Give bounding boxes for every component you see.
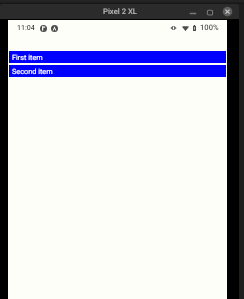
- button[interactable]: Minimize: [186, 4, 201, 19]
- other: Wi-Fi: [182, 25, 189, 31]
- staticText: Pixel 2 XL: [103, 7, 137, 16]
- other: Notification: [40, 25, 47, 32]
- other: Status: [170, 25, 177, 31]
- staticText: 11:04: [17, 24, 35, 32]
- staticText: 100%: [200, 23, 219, 32]
- button[interactable]: Maximize: [203, 4, 218, 19]
- other: Notification: [51, 25, 58, 32]
- staticText: First item: [12, 53, 43, 62]
- other: Battery: [193, 25, 196, 31]
- button[interactable]: First item: [9, 51, 226, 63]
- button[interactable]: Close: [220, 4, 235, 19]
- button[interactable]: Second item: [9, 65, 226, 77]
- staticText: Second item: [12, 67, 53, 76]
